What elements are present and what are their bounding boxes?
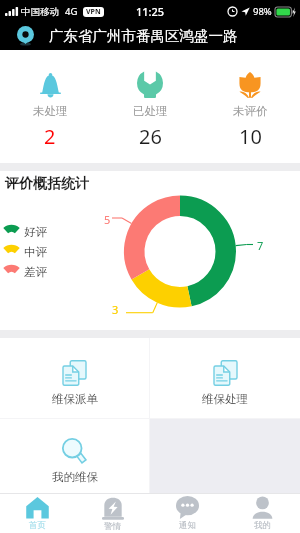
- button[interactable]: 首页: [0, 494, 75, 533]
- staticText: 98%: [253, 5, 272, 18]
- staticText: 未评价: [233, 104, 268, 118]
- button[interactable]: 维保处理: [150, 338, 300, 418]
- staticText: 警情: [104, 521, 121, 532]
- staticText: 我的维保: [52, 470, 98, 484]
- other: Location: [17, 26, 34, 46]
- staticText: 5: [104, 212, 111, 227]
- staticText: 好评: [24, 225, 47, 239]
- button[interactable]: 未处理: [0, 50, 100, 163]
- button[interactable]: 通知: [150, 494, 225, 533]
- staticText: 差评: [24, 265, 47, 279]
- staticText: 未处理: [33, 104, 68, 118]
- staticText: 11:25: [136, 4, 165, 19]
- staticText: 3: [112, 302, 119, 317]
- staticText: 中国移动: [21, 6, 59, 18]
- staticText: 26: [139, 123, 162, 150]
- button[interactable]: 未评价: [200, 50, 300, 163]
- staticText: 评价概括统计: [5, 175, 89, 193]
- button[interactable]: 警情: [75, 494, 150, 533]
- staticText: 2: [44, 123, 56, 150]
- button[interactable]: 已处理: [100, 50, 200, 163]
- staticText: 中评: [24, 245, 47, 259]
- staticText: 首页: [29, 520, 46, 531]
- staticText: 通知: [179, 520, 196, 531]
- button[interactable]: 维保派单: [0, 338, 149, 418]
- button[interactable]: 我的维保: [0, 419, 149, 493]
- staticText: VPN: [86, 7, 101, 17]
- staticText: 7: [257, 238, 264, 253]
- staticText: 已处理: [133, 104, 168, 118]
- staticText: 广东省广州市番禺区鸿盛一路: [49, 27, 238, 45]
- staticText: 4G: [65, 5, 78, 18]
- staticText: 维保处理: [202, 392, 248, 406]
- staticText: 维保派单: [52, 392, 98, 406]
- staticText: 10: [239, 123, 262, 150]
- staticText: 我的: [254, 520, 271, 531]
- button[interactable]: 我的: [225, 494, 300, 533]
